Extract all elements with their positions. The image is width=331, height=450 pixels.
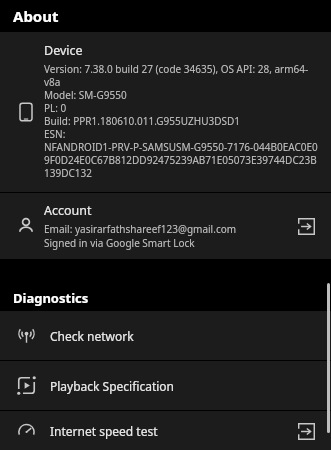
staticText: Version: 7.38.0 build 27 (code 34635), O… (44, 63, 321, 180)
button[interactable]: Open account (287, 207, 325, 245)
button[interactable]: Internet speed test (0, 411, 331, 450)
staticText: Internet speed test (50, 423, 287, 439)
staticText: Account (44, 202, 92, 219)
button[interactable]: Device (0, 32, 331, 192)
staticText: Diagnostics (13, 289, 89, 307)
staticText: Device (44, 42, 83, 59)
button[interactable]: Account (0, 193, 331, 259)
button[interactable]: Open Internet speed test (287, 412, 325, 450)
staticText: Check network (50, 328, 325, 344)
staticText: Signed in via Google Smart Lock (44, 236, 195, 250)
staticText: About (13, 6, 59, 26)
button[interactable]: Check network (0, 311, 331, 360)
staticText: Email: yasirarfathshareef123@gmail.com (44, 222, 237, 236)
button[interactable]: Playback Specification (0, 361, 331, 410)
staticText: Playback Specification (50, 378, 325, 394)
